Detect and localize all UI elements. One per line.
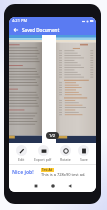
- staticText: Export pdf: [34, 157, 52, 162]
- button[interactable]: Back: [66, 182, 74, 190]
- staticText: Edit: [18, 157, 25, 162]
- button[interactable]: Back: [11, 25, 20, 34]
- staticText: Save: [80, 157, 88, 162]
- button[interactable]: Rotate: [60, 145, 71, 162]
- staticText: Test Ad: [42, 168, 53, 172]
- staticText: Rotate: [60, 157, 71, 162]
- button[interactable]: Export pdf: [34, 145, 52, 162]
- staticText: Nice job!: [12, 169, 34, 176]
- button[interactable]: Home: [49, 182, 57, 190]
- staticText: 1/2: [49, 133, 56, 138]
- button[interactable]: Recents: [32, 182, 40, 190]
- staticText: This is a 728x90 test ad.: [41, 172, 86, 177]
- button[interactable]: Edit: [16, 145, 27, 162]
- button[interactable]: Save: [78, 145, 89, 162]
- staticText: 4:21 PM: [12, 18, 28, 23]
- staticText: Saved Document: [22, 27, 60, 33]
